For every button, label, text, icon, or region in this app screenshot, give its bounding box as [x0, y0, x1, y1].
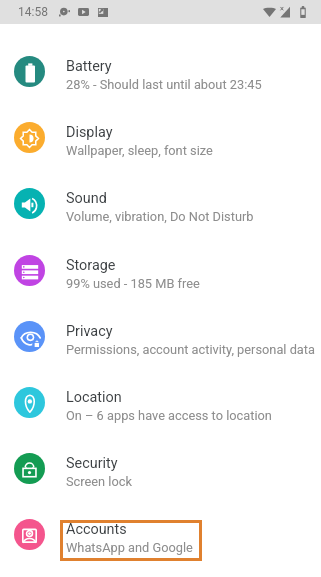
staticText: On – 6 apps have access to location: [66, 408, 272, 423]
staticText: Wallpaper, sleep, font size: [66, 143, 213, 158]
button[interactable]: Security: [0, 435, 321, 501]
staticText: Accounts: [66, 521, 127, 538]
button[interactable]: Sound: [0, 170, 321, 236]
staticText: Battery: [66, 58, 112, 75]
staticText: Storage: [66, 257, 116, 274]
staticText: Privacy: [66, 323, 113, 340]
button[interactable]: Storage: [0, 237, 321, 303]
button[interactable]: Accounts: [0, 501, 321, 567]
button[interactable]: Battery: [0, 38, 321, 104]
staticText: Sound: [66, 190, 107, 207]
button[interactable]: Display: [0, 104, 321, 170]
staticText: Permissions, account activity, personal …: [66, 342, 315, 357]
staticText: Volume, vibration, Do Not Disturb: [66, 209, 254, 224]
staticText: 14:58: [18, 5, 48, 19]
staticText: 99% used - 185 MB free: [66, 276, 200, 291]
button[interactable]: Location: [0, 369, 321, 435]
button[interactable]: Privacy: [0, 303, 321, 369]
staticText: Screen lock: [66, 474, 132, 489]
staticText: 28% - Should last until about 23:45: [66, 77, 262, 92]
staticText: WhatsApp and Google: [66, 540, 193, 555]
staticText: Display: [66, 124, 113, 141]
staticText: Security: [66, 455, 118, 472]
staticText: Location: [66, 389, 122, 406]
